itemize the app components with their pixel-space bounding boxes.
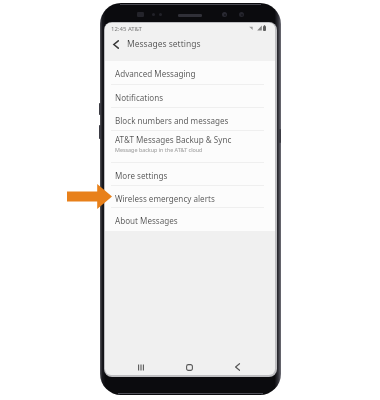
button[interactable]: Notifications	[105, 85, 275, 107]
staticText: Messages settings	[127, 38, 201, 50]
button[interactable]: Block numbers and messages	[105, 108, 275, 130]
button[interactable]: More settings	[105, 163, 275, 185]
button[interactable]: AT&T Messages Backup & Sync	[105, 131, 275, 162]
staticText: Notifications	[115, 92, 164, 103]
button[interactable]: Recent apps	[129, 355, 153, 375]
staticText: More settings	[115, 170, 168, 181]
staticText: 12:45 AT&T	[111, 25, 142, 33]
staticText: AT&T Messages Backup & Sync	[115, 134, 232, 145]
staticText: Block numbers and messages	[115, 115, 229, 126]
staticText: About Messages	[115, 215, 178, 226]
button[interactable]: Advanced Messaging	[105, 61, 275, 84]
button[interactable]: Home	[177, 355, 201, 375]
button[interactable]: Wireless emergency alerts	[105, 186, 275, 207]
button[interactable]: Messages settings	[127, 33, 201, 55]
staticText: Message backup in the AT&T cloud	[115, 146, 203, 153]
button[interactable]: Back	[225, 355, 249, 375]
staticText: Wireless emergency alerts	[115, 193, 215, 204]
button[interactable]: Back	[106, 33, 126, 55]
button[interactable]: About Messages	[105, 208, 275, 231]
staticText: Advanced Messaging	[115, 68, 196, 79]
